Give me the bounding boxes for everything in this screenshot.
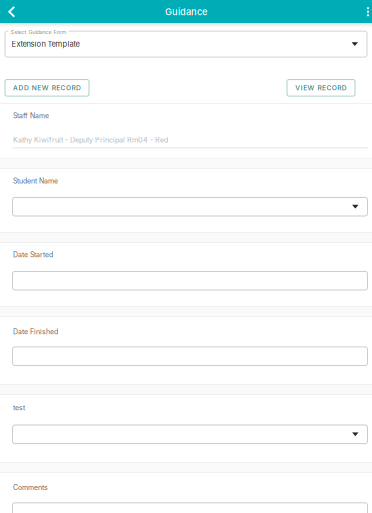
staticText: Comments <box>13 483 48 492</box>
button[interactable] <box>12 271 367 290</box>
staticText: Guidance <box>165 6 207 17</box>
staticText: Date Started <box>13 251 53 259</box>
button[interactable] <box>12 503 367 513</box>
staticText: VIEW RECORD <box>295 84 347 92</box>
button[interactable]: ADD NEW RECORD <box>5 80 89 96</box>
button[interactable] <box>12 425 367 444</box>
staticText: Kathy Kiwifruit - Deputy Principal Rm04 … <box>13 136 168 144</box>
button[interactable]: More options <box>364 0 372 23</box>
button[interactable]: Extension Template <box>5 31 367 57</box>
staticText: test <box>13 404 25 412</box>
staticText: Staff Name <box>13 112 49 120</box>
button[interactable]: VIEW RECORD <box>287 80 355 96</box>
staticText: ADD NEW RECORD <box>13 84 81 92</box>
staticText: Extension Template <box>11 39 79 49</box>
staticText: Select Guidance Form <box>10 29 66 35</box>
button[interactable] <box>12 347 367 365</box>
staticText: Date Finished <box>13 327 58 336</box>
button[interactable] <box>12 197 367 216</box>
button[interactable]: Back <box>0 0 23 23</box>
staticText: Student Name <box>13 177 58 185</box>
